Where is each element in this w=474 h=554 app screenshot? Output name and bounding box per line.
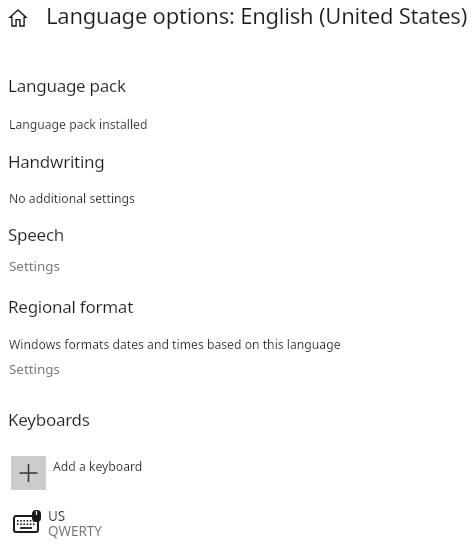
staticText: Language pack installed	[9, 116, 148, 133]
button[interactable]	[10, 506, 210, 548]
staticText: Language pack	[8, 74, 126, 97]
button[interactable]: Settings	[9, 257, 60, 275]
staticText: No additional settings	[9, 190, 135, 207]
staticText: Regional format	[8, 295, 134, 318]
staticText: Handwriting	[8, 150, 105, 173]
button[interactable]: Settings	[9, 360, 60, 378]
staticText: Windows formats dates and times based on…	[9, 336, 341, 353]
staticText: Keyboards	[8, 408, 90, 431]
staticText: Speech	[8, 223, 65, 246]
staticText: QWERTY	[48, 522, 103, 540]
staticText: Add a keyboard	[53, 458, 143, 475]
button[interactable]	[10, 10, 26, 26]
staticText: US	[48, 507, 66, 525]
button[interactable]	[11, 456, 46, 490]
staticText: Language options: English (United States…	[46, 0, 468, 30]
